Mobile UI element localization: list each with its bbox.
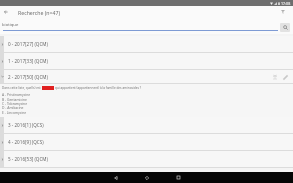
- staticText: 2 - 2017[50] (QCM): [8, 74, 48, 80]
- button[interactable]: 0 - 2017[27] (QCM): [0, 36, 293, 52]
- button[interactable]: Back: [0, 6, 12, 18]
- staticText: D - Amikacine: [2, 105, 24, 110]
- button[interactable]: Back: [103, 172, 129, 183]
- staticText: 3 - 2016[1] (QCS): [8, 122, 44, 128]
- button[interactable]: 3 - 2016[1] (QCS): [0, 117, 293, 133]
- button[interactable]: Recent apps: [165, 172, 191, 183]
- staticText: biotique: [2, 22, 19, 28]
- staticText: Dans cette liste, quel(s) est: [2, 86, 41, 90]
- button[interactable]: 1 - 2017[33] (QCM): [0, 53, 293, 69]
- staticText: A - Pristinamycine: [2, 92, 31, 97]
- staticText: 17:08: [281, 1, 291, 6]
- button[interactable]: Home: [134, 172, 160, 183]
- staticText: 5 - 2016[53] (QCM): [8, 156, 48, 162]
- staticText: Recherche (n=47): [18, 9, 61, 16]
- staticText: 1 - 2017[33] (QCM): [8, 58, 48, 64]
- button[interactable]: 4 - 2016[9] (QCS): [0, 134, 293, 150]
- button[interactable]: Filter: [276, 6, 290, 18]
- button[interactable]: 2 - 2017[50] (QCM): [0, 70, 293, 83]
- staticText: 0 - 2017[27] (QCM): [8, 41, 48, 47]
- staticText: qui appartient (appartiennent) à la fami…: [55, 86, 142, 90]
- button[interactable]: Edit: [280, 72, 290, 82]
- staticText: B - Gentamicine: [2, 97, 27, 102]
- button[interactable]: 5 - 2016[53] (QCM): [0, 151, 293, 167]
- staticText: C - Tobramycine: [2, 101, 28, 106]
- staticText: 4 - 2016[9] (QCS): [8, 139, 44, 145]
- button[interactable]: Search: [280, 23, 290, 32]
- staticText: E - Lincomycine: [2, 110, 27, 115]
- button[interactable]: Statistics: [270, 72, 280, 82]
